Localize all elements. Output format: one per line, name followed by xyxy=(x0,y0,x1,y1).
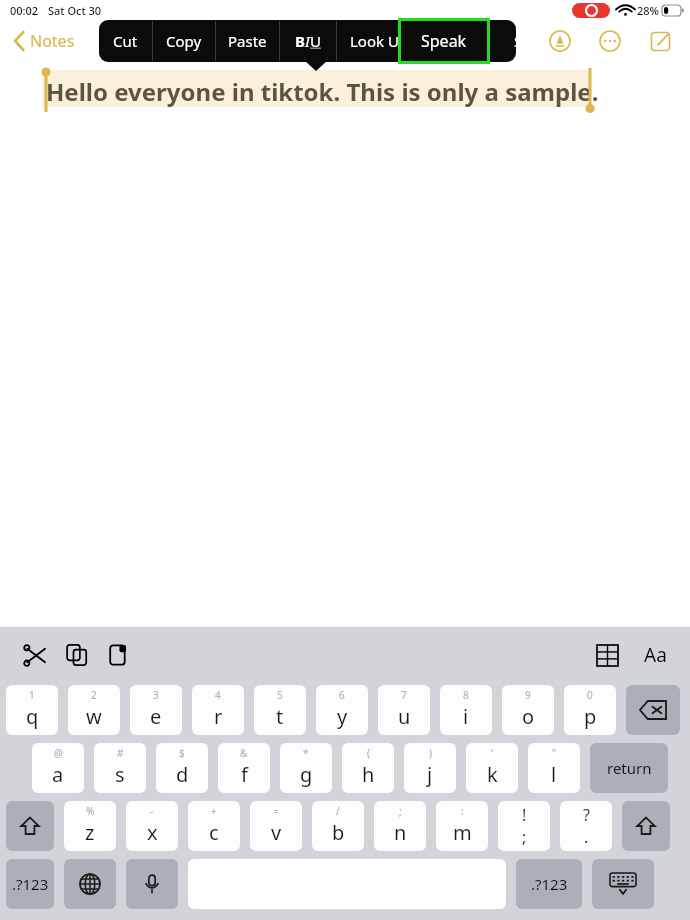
button[interactable]: @ xyxy=(32,743,84,793)
staticText: / xyxy=(336,804,340,818)
staticText: e xyxy=(150,703,162,730)
button[interactable]: - xyxy=(126,801,178,851)
staticText: j xyxy=(427,761,433,788)
button[interactable]: 4 xyxy=(192,685,244,735)
button[interactable]: 3 xyxy=(130,685,182,735)
button[interactable]: & xyxy=(218,743,270,793)
staticText: ; xyxy=(522,826,527,848)
staticText: Look Up xyxy=(350,31,409,51)
button[interactable]: Notes xyxy=(14,30,75,52)
button[interactable]: .?123 xyxy=(516,859,582,909)
staticText: = xyxy=(273,804,279,818)
button[interactable]: Shift xyxy=(622,801,670,851)
button[interactable]: ? xyxy=(560,801,612,851)
staticText: v xyxy=(271,819,282,846)
button[interactable]: Backspace xyxy=(626,685,680,735)
staticText: + xyxy=(211,804,217,818)
staticText: ; xyxy=(399,804,402,818)
staticText: b xyxy=(332,819,345,846)
button[interactable]: ' xyxy=(466,743,518,793)
button[interactable]: ; xyxy=(374,801,426,851)
button[interactable]: 8 xyxy=(440,685,492,735)
button[interactable]: % xyxy=(64,801,116,851)
button[interactable]: / xyxy=(312,801,364,851)
staticText: I xyxy=(305,31,310,51)
button[interactable]: Hide keyboard xyxy=(592,859,654,909)
staticText: ' xyxy=(491,746,494,760)
staticText: g xyxy=(300,761,313,788)
button[interactable]: 1 xyxy=(6,685,58,735)
button[interactable]: Share... xyxy=(514,20,516,62)
button[interactable]: = xyxy=(250,801,302,851)
button[interactable]: 9 xyxy=(502,685,554,735)
staticText: " xyxy=(552,746,557,760)
staticText: p xyxy=(584,703,597,730)
staticText: - xyxy=(150,804,154,818)
staticText: 3 xyxy=(153,688,159,702)
staticText: 28% xyxy=(637,3,659,18)
staticText: x xyxy=(147,819,158,846)
button[interactable]: 5 xyxy=(254,685,306,735)
button[interactable]: Paste xyxy=(216,20,279,62)
button[interactable]: 0 xyxy=(564,685,616,735)
staticText: k xyxy=(487,761,498,788)
staticText: w xyxy=(86,703,102,730)
staticText: 2 xyxy=(91,688,97,702)
staticText: 4 xyxy=(215,688,221,702)
staticText: % xyxy=(86,804,95,818)
button[interactable]: .?123 xyxy=(6,859,54,909)
button[interactable]: Paste xyxy=(100,636,138,674)
staticText: 8 xyxy=(463,688,469,702)
button[interactable]: Language xyxy=(64,859,116,909)
button[interactable]: B xyxy=(280,20,336,62)
button[interactable]: 2 xyxy=(68,685,120,735)
button[interactable]: Compose xyxy=(644,25,676,57)
staticText: .?123 xyxy=(12,874,49,894)
button[interactable]: 6 xyxy=(316,685,368,735)
staticText: o xyxy=(522,703,535,730)
staticText: c xyxy=(209,819,219,846)
button[interactable]: Dictation xyxy=(126,859,178,909)
button[interactable]: ( xyxy=(342,743,394,793)
staticText: .?123 xyxy=(531,874,568,894)
button[interactable]: ) xyxy=(404,743,456,793)
button[interactable]: $ xyxy=(156,743,208,793)
button[interactable]: : xyxy=(436,801,488,851)
staticText: $ xyxy=(179,746,185,760)
staticText: @ xyxy=(54,746,63,760)
button[interactable]: Copy xyxy=(58,636,96,674)
staticText: 9 xyxy=(525,688,531,702)
button[interactable]: Table xyxy=(588,636,626,674)
button[interactable]: Format xyxy=(636,636,674,674)
button[interactable]: Look Up xyxy=(337,20,422,62)
staticText: d xyxy=(176,761,189,788)
button[interactable]: Shift xyxy=(6,801,54,851)
staticText: 5 xyxy=(277,688,283,702)
staticText: y xyxy=(337,703,348,730)
button[interactable]: Cut xyxy=(99,20,152,62)
button[interactable]: Speak xyxy=(401,21,487,61)
button[interactable]: return xyxy=(590,743,668,793)
button[interactable]: Markup xyxy=(544,25,576,57)
button[interactable]: ! xyxy=(498,801,550,851)
staticText: return xyxy=(607,758,652,778)
staticText: Sat Oct 30 xyxy=(48,3,102,18)
staticText: . xyxy=(584,826,589,848)
button[interactable]: Copy xyxy=(153,20,215,62)
staticText: z xyxy=(85,819,95,846)
staticText: Hello everyone in tiktok. This is only a… xyxy=(46,75,599,108)
button[interactable]: More xyxy=(594,25,626,57)
staticText: f xyxy=(241,761,248,788)
button[interactable]: 7 xyxy=(378,685,430,735)
staticText: * xyxy=(303,746,309,760)
button[interactable]: Cut xyxy=(16,636,54,674)
button[interactable]: + xyxy=(188,801,240,851)
staticText: # xyxy=(117,746,124,760)
staticText: u xyxy=(398,703,411,730)
button[interactable]: * xyxy=(280,743,332,793)
button[interactable]: # xyxy=(94,743,146,793)
staticText: ! xyxy=(522,804,527,826)
button[interactable]: " xyxy=(528,743,580,793)
staticText: q xyxy=(26,703,39,730)
